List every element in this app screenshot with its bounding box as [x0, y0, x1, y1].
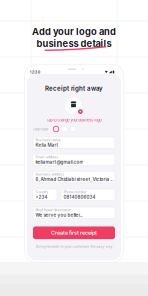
staticText: business details — [36, 38, 111, 49]
button[interactable]: Country — [33, 189, 57, 200]
staticText: Tap to change your business logo — [46, 118, 101, 122]
staticText: keliamart@gmail.com — [35, 159, 83, 165]
staticText: Add your logo and — [32, 26, 116, 37]
button[interactable]: Brief footer description — [33, 207, 115, 218]
staticText: Country — [35, 190, 48, 194]
button[interactable]: Business address — [33, 171, 115, 183]
staticText: Business name — [35, 138, 60, 142]
staticText: Logo type — [32, 127, 48, 131]
staticText: Kelia Mart — [35, 142, 58, 148]
staticText: +234 — [35, 194, 47, 200]
staticText: 6, Ahmad Chidiabi street, Victoria islan… — [35, 177, 114, 182]
staticText: Create first receipt — [51, 230, 97, 236]
staticText: Giving receipts to your customers the ea… — [35, 244, 112, 248]
button[interactable]: Phone number — [61, 189, 115, 200]
staticText: 08140806034 — [63, 194, 95, 200]
staticText: Phone number — [63, 190, 86, 194]
staticText: We serve you better... — [35, 212, 82, 218]
button[interactable]: Business name — [33, 137, 115, 148]
staticText: Brief footer description — [35, 208, 71, 212]
staticText: Receipt right away — [45, 85, 103, 92]
staticText: Email address — [35, 155, 58, 159]
staticText: 12:30 — [30, 70, 41, 74]
staticText: Business address — [35, 172, 64, 176]
button[interactable]: Create first receipt — [33, 226, 115, 239]
button[interactable]: Email address — [33, 154, 115, 165]
